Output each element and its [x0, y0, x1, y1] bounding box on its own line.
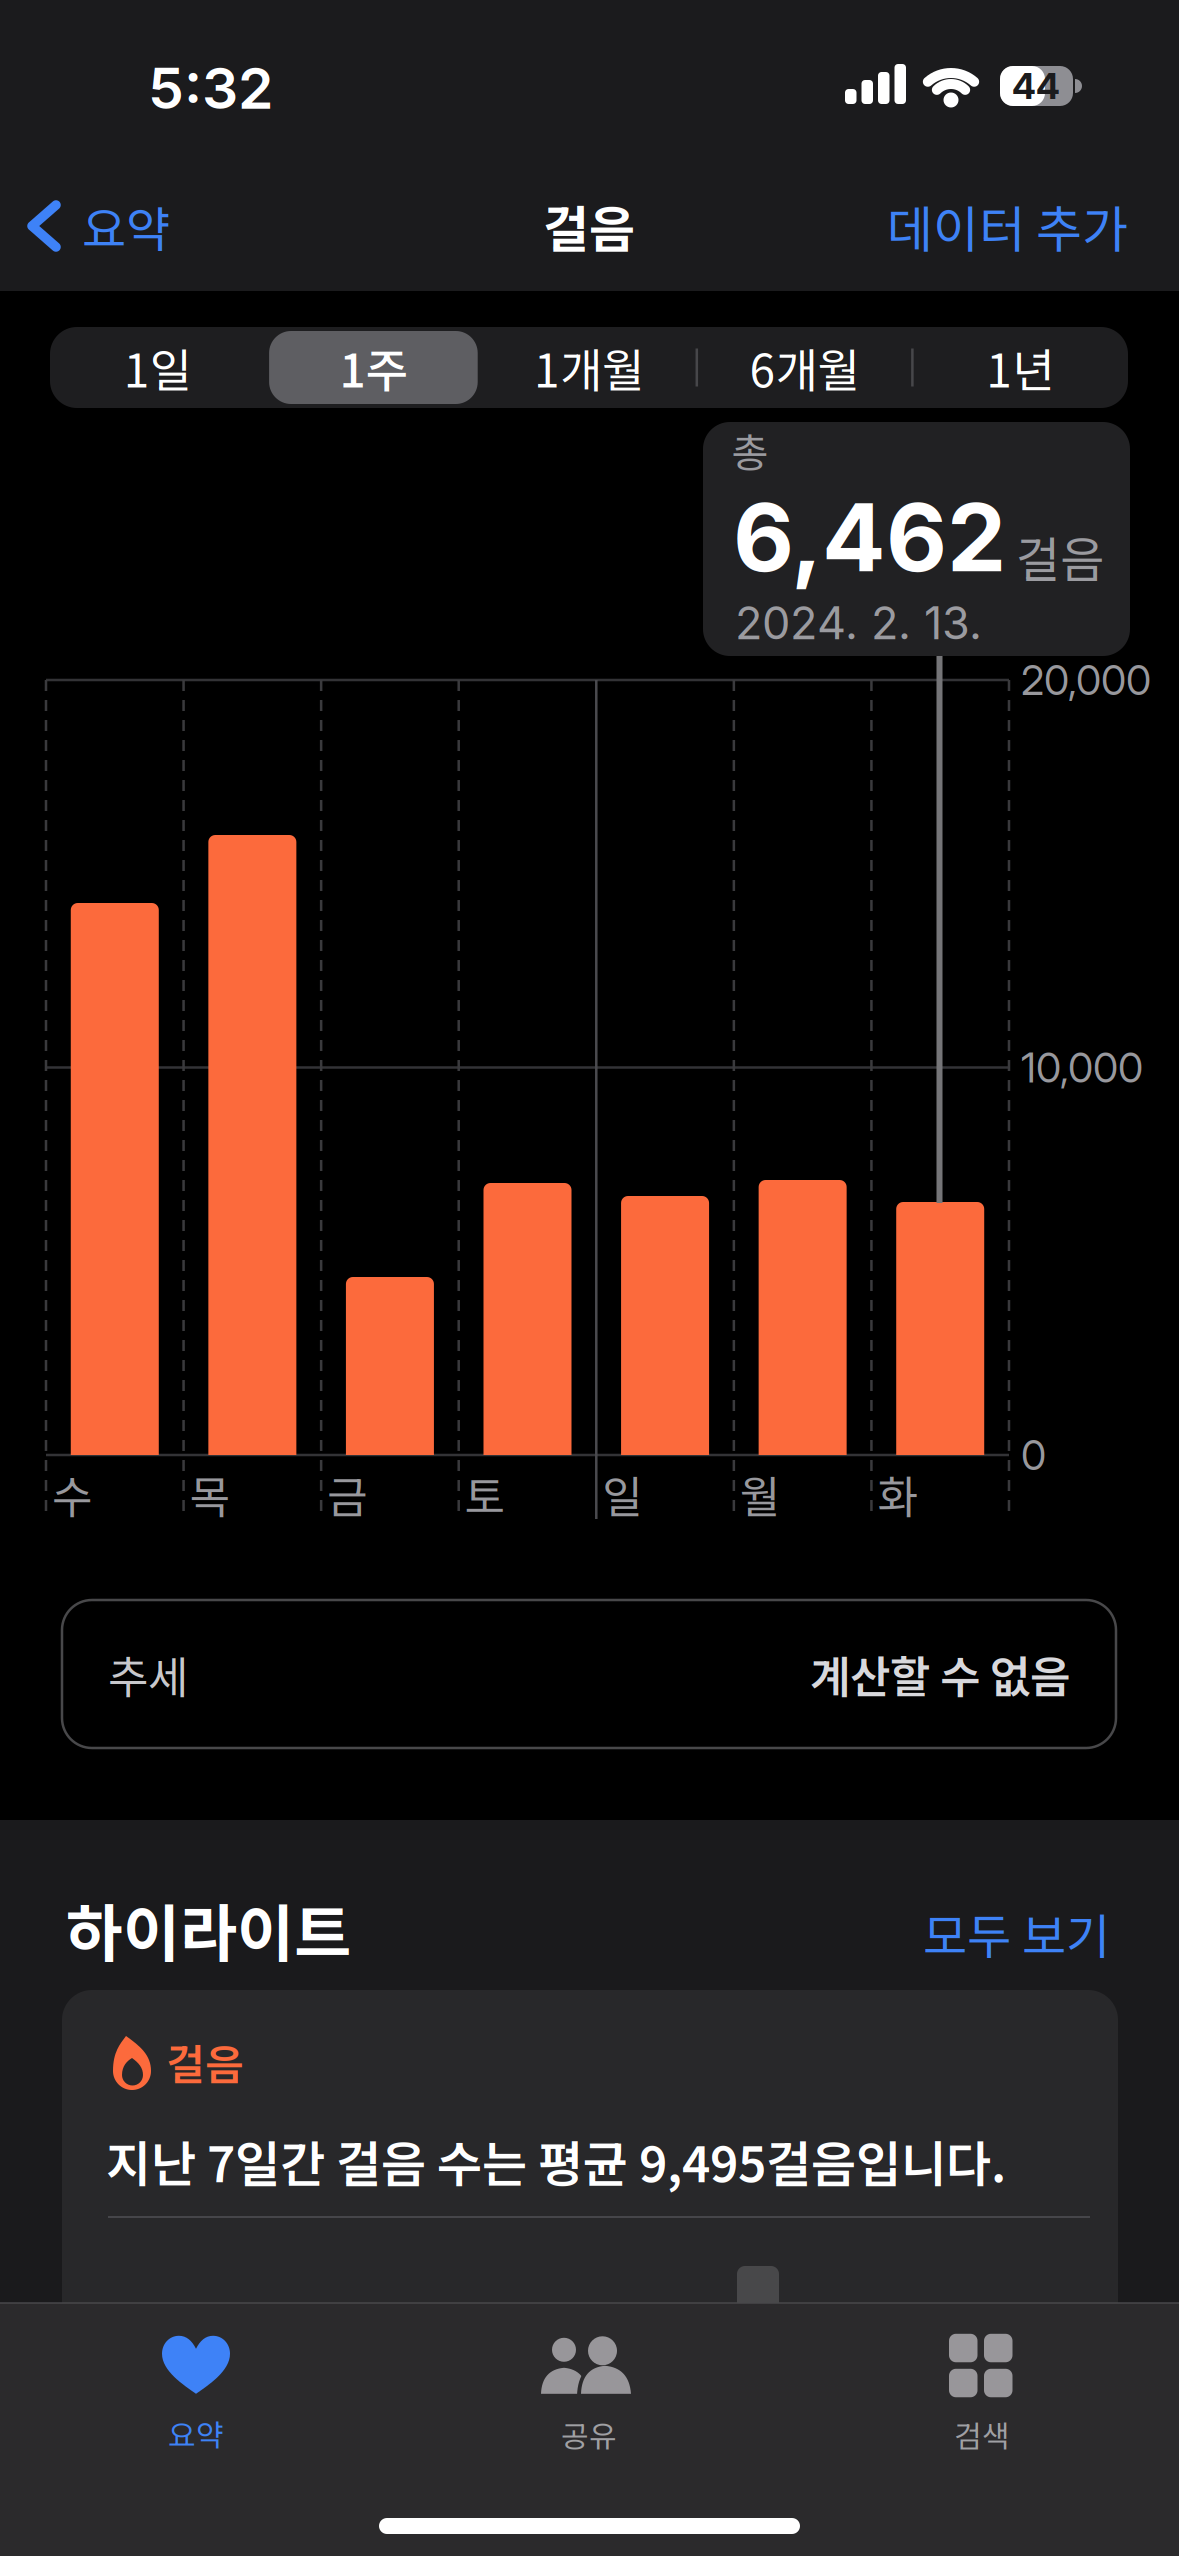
button[interactable]: 1개월	[481, 327, 697, 408]
staticText: 검색	[954, 2413, 1010, 2456]
staticText: 목	[190, 1462, 230, 1526]
staticText: 총	[731, 421, 768, 479]
staticText: 걸음	[166, 2032, 244, 2092]
staticText: 20,000	[1021, 655, 1151, 705]
staticText: 1개월	[534, 334, 644, 401]
staticText: 지난 7일간 걸음 수는 평균 9,495걸음입니다.	[106, 2125, 1006, 2196]
staticText: 1년	[986, 334, 1054, 401]
button[interactable]: 데이터 추가	[788, 181, 1128, 271]
staticText: 월	[740, 1462, 780, 1526]
button[interactable]: 검색	[832, 2310, 1132, 2480]
staticText: 5:32	[148, 53, 274, 122]
staticText: 일	[602, 1462, 642, 1526]
staticText: 공유	[561, 2413, 617, 2456]
button[interactable]: 추세	[62, 1600, 1116, 1748]
staticText: 요약	[82, 191, 170, 261]
staticText: 수	[52, 1462, 92, 1526]
button[interactable]: 걸음 하이라이트	[62, 1990, 1118, 2556]
staticText: 6개월	[750, 334, 860, 401]
staticText: 추세	[108, 1642, 188, 1706]
button[interactable]: 6개월	[697, 327, 912, 408]
staticText: 10,000	[1021, 1043, 1143, 1092]
staticText: 데이터 추가	[887, 190, 1128, 262]
button[interactable]: 1일	[50, 327, 266, 408]
staticText: 2024. 2. 13.	[735, 596, 982, 650]
staticText: 하이라이트	[66, 1884, 351, 1974]
staticText: 1주	[339, 334, 407, 401]
button[interactable]: 1년	[912, 327, 1128, 408]
staticText: 계산할 수 없음	[810, 1642, 1070, 1706]
button[interactable]: Back	[28, 181, 258, 271]
staticText: 1일	[124, 334, 192, 401]
button[interactable]: 1주	[266, 327, 481, 408]
staticText: 44	[1012, 64, 1060, 108]
staticText: 6,462	[733, 480, 1006, 594]
staticText: 금	[327, 1462, 367, 1526]
staticText: 요약	[168, 2412, 224, 2455]
staticText: 모두 보기	[923, 1898, 1110, 1968]
staticText: 화	[877, 1462, 917, 1526]
button[interactable]: 모두 보기	[810, 1895, 1110, 1971]
button[interactable]: 공유	[439, 2310, 739, 2480]
button[interactable]: 요약	[46, 2310, 346, 2480]
staticText: 걸음	[1016, 521, 1104, 591]
staticText: 0	[1021, 1430, 1046, 1480]
staticText: 토	[465, 1462, 505, 1526]
staticText: 걸음	[543, 190, 635, 262]
